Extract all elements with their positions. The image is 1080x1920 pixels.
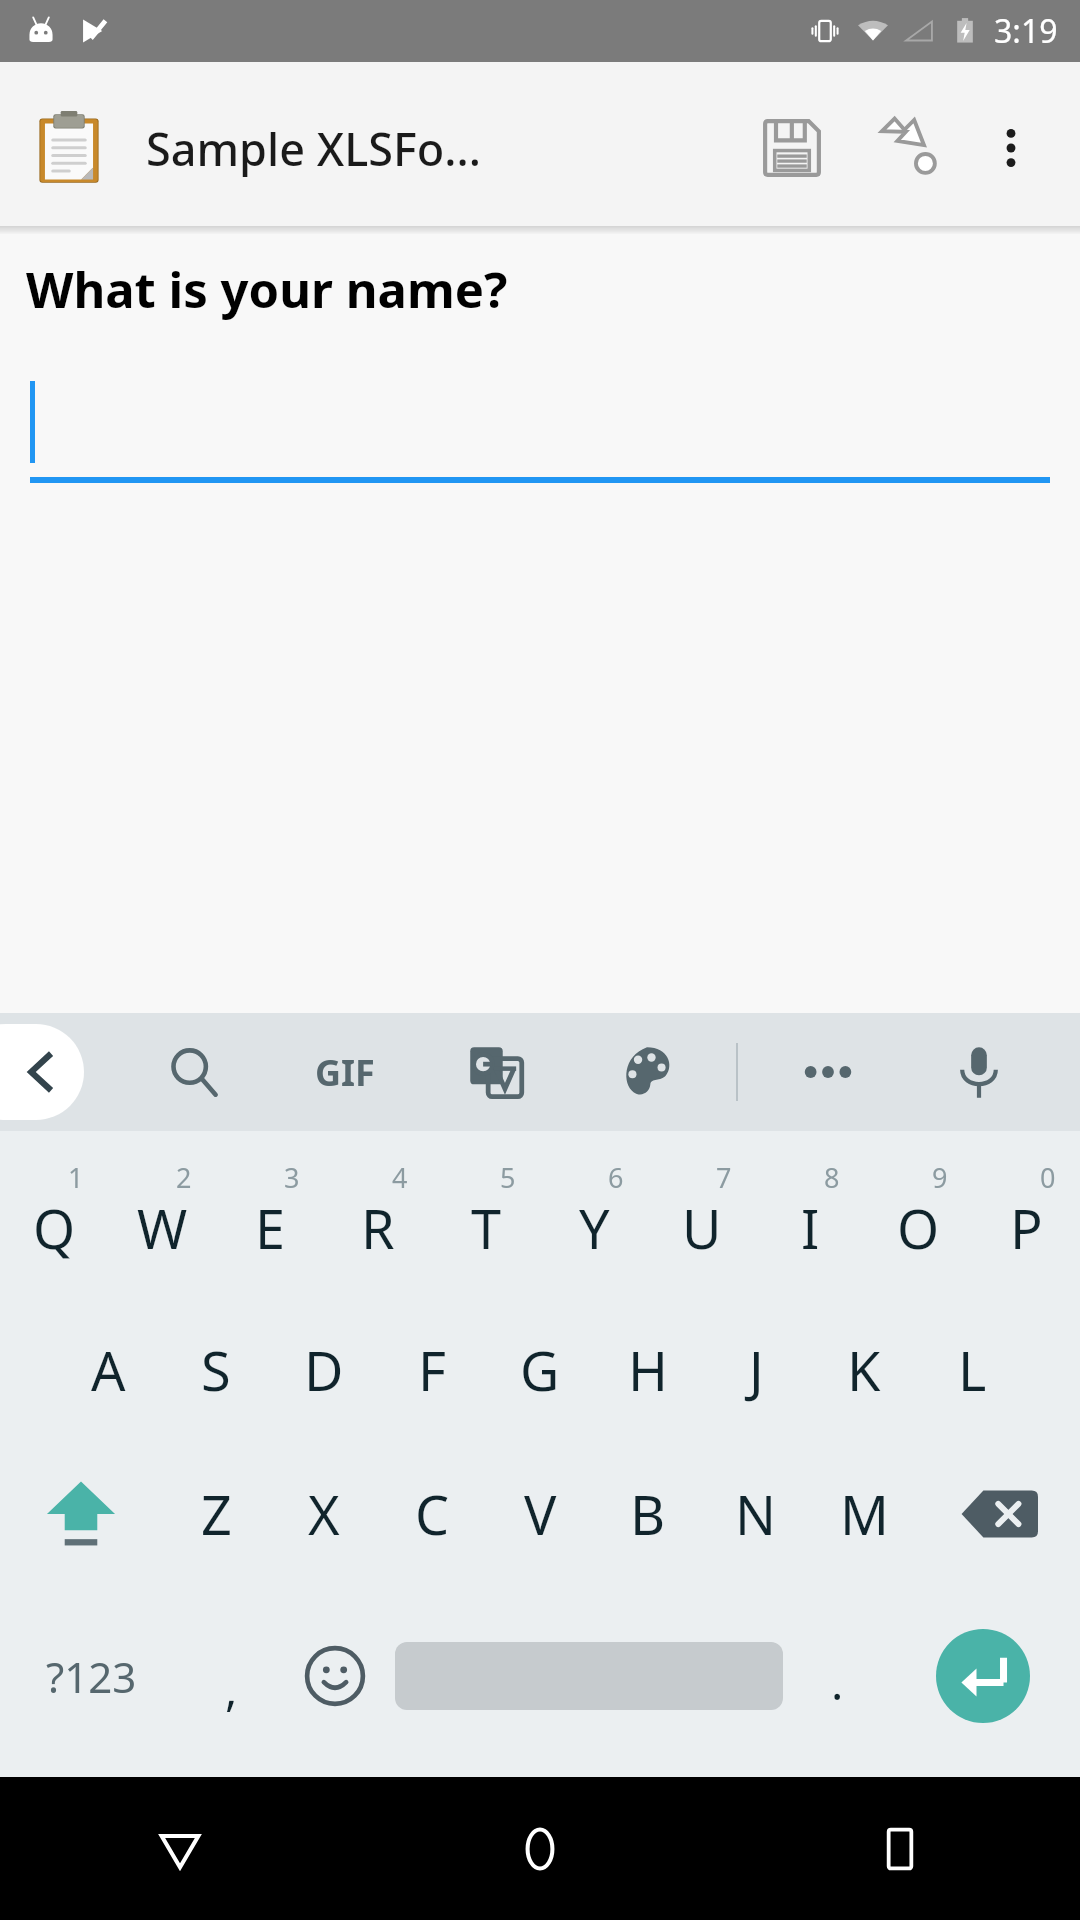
button[interactable]: Backspace <box>918 1449 1080 1579</box>
staticText: 7 <box>716 1159 732 1196</box>
button[interactable]: 8 <box>756 1149 864 1291</box>
staticText: V <box>524 1477 557 1551</box>
button[interactable]: Close toolbar <box>0 1024 84 1120</box>
staticText: H <box>628 1333 669 1407</box>
staticText: Sample XLSFo... <box>146 118 744 179</box>
staticText: J <box>749 1333 764 1407</box>
staticText: 3 <box>284 1159 300 1196</box>
staticText: What is your name? <box>26 256 508 323</box>
staticText: D <box>304 1333 344 1407</box>
staticText: 0 <box>1040 1159 1056 1196</box>
button[interactable]: Save form <box>744 100 840 196</box>
staticText: 4 <box>392 1159 408 1196</box>
button[interactable]: . <box>789 1601 886 1751</box>
button[interactable]: C <box>378 1449 486 1579</box>
staticText: . <box>831 1651 844 1714</box>
button[interactable]: F <box>378 1305 486 1435</box>
staticText: 2 <box>176 1159 192 1196</box>
staticText: GIF <box>315 1048 375 1097</box>
staticText: T <box>471 1191 502 1265</box>
staticText: Z <box>201 1477 232 1551</box>
button[interactable]: X <box>270 1449 378 1579</box>
button[interactable]: J <box>702 1305 810 1435</box>
button[interactable]: 5 <box>432 1149 540 1291</box>
staticText: , <box>225 1657 238 1720</box>
staticText: B <box>630 1477 666 1551</box>
button[interactable]: G <box>486 1305 594 1435</box>
button[interactable]: Z <box>162 1449 270 1579</box>
button[interactable]: 1 <box>0 1149 108 1291</box>
button[interactable]: More <box>752 1013 903 1131</box>
staticText: N <box>735 1477 777 1551</box>
button[interactable]: Go to prompt <box>862 100 958 196</box>
button[interactable]: 6 <box>540 1149 648 1291</box>
button[interactable]: M <box>810 1449 918 1579</box>
staticText: P <box>1010 1191 1043 1265</box>
button[interactable]: A <box>54 1305 162 1435</box>
staticText: U <box>682 1191 722 1265</box>
button[interactable]: Home <box>360 1777 720 1920</box>
staticText: 6 <box>608 1159 624 1196</box>
button[interactable]: N <box>702 1449 810 1579</box>
button[interactable]: K <box>810 1305 918 1435</box>
staticText: 5 <box>500 1159 516 1196</box>
button[interactable]: Emoji <box>280 1601 389 1751</box>
staticText: S <box>201 1333 231 1407</box>
button[interactable]: 7 <box>648 1149 756 1291</box>
button[interactable]: Shift <box>0 1449 162 1579</box>
button[interactable]: Themes <box>571 1013 722 1131</box>
staticText: 8 <box>824 1159 840 1196</box>
button[interactable]: D <box>270 1305 378 1435</box>
staticText: R <box>361 1191 395 1265</box>
button[interactable]: Search <box>118 1013 269 1131</box>
button[interactable]: 3 <box>216 1149 324 1291</box>
staticText: X <box>308 1477 340 1551</box>
button[interactable]: 4 <box>324 1149 432 1291</box>
button[interactable]: S <box>162 1305 270 1435</box>
button[interactable]: 2 <box>108 1149 216 1291</box>
staticText: C <box>415 1477 450 1551</box>
button[interactable]: , <box>183 1601 280 1751</box>
button[interactable]: V <box>486 1449 594 1579</box>
staticText: W <box>137 1191 188 1265</box>
button[interactable]: H <box>594 1305 702 1435</box>
button[interactable] <box>26 105 112 191</box>
staticText: E <box>255 1191 286 1265</box>
staticText: O <box>897 1191 940 1265</box>
button[interactable]: Voice input <box>903 1013 1054 1131</box>
staticText: G <box>520 1333 560 1407</box>
button[interactable]: B <box>594 1449 702 1579</box>
staticText: I <box>801 1191 820 1265</box>
button[interactable]: GIF <box>269 1013 420 1131</box>
button[interactable]: 0 <box>972 1149 1080 1291</box>
staticText: F <box>418 1333 447 1407</box>
button[interactable] <box>30 375 1050 483</box>
staticText: 3:19 <box>994 9 1058 53</box>
staticText: ?123 <box>46 1648 137 1705</box>
button[interactable]: Enter <box>886 1601 1080 1751</box>
staticText: A <box>91 1333 126 1407</box>
staticText: Q <box>33 1191 76 1265</box>
button[interactable]: Recent apps <box>720 1777 1080 1920</box>
staticText: Y <box>579 1191 610 1265</box>
staticText: 9 <box>932 1159 948 1196</box>
button[interactable]: Translate <box>420 1013 571 1131</box>
staticText: L <box>958 1333 987 1407</box>
button[interactable]: Space <box>389 1601 789 1751</box>
button[interactable]: Back <box>0 1777 360 1920</box>
staticText: M <box>840 1477 889 1551</box>
staticText: K <box>847 1333 881 1407</box>
staticText: 1 <box>68 1159 84 1196</box>
button[interactable]: ?123 <box>0 1601 183 1751</box>
button[interactable]: More options <box>968 105 1054 191</box>
button[interactable]: L <box>918 1305 1026 1435</box>
button[interactable]: 9 <box>864 1149 972 1291</box>
